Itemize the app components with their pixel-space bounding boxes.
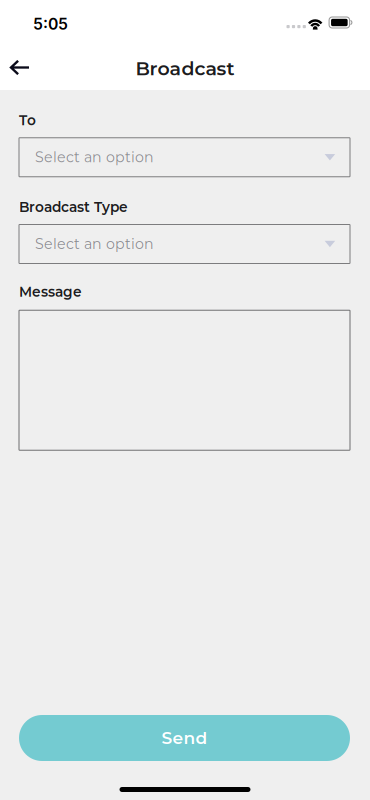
staticText: Message: [19, 283, 82, 300]
button[interactable]: Send: [19, 715, 350, 761]
staticText: 5:05: [33, 14, 68, 33]
staticText: Select an option: [35, 149, 154, 166]
staticText: Broadcast Type: [19, 199, 128, 215]
staticText: To: [19, 112, 36, 129]
button[interactable]: Select an option: [19, 224, 350, 263]
button[interactable]: [19, 310, 350, 450]
staticText: Broadcast: [135, 57, 234, 80]
button[interactable]: Back: [0, 45, 44, 90]
staticText: Send: [161, 728, 207, 748]
staticText: Select an option: [35, 235, 154, 253]
button[interactable]: Select an option: [19, 138, 350, 177]
